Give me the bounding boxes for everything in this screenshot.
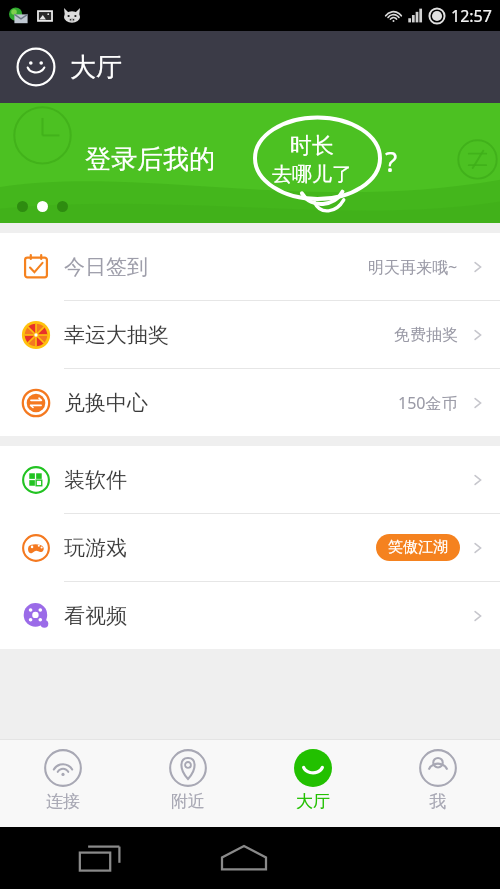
button[interactable]: 玩游戏 [0, 514, 500, 581]
staticText: 150金币 [398, 392, 458, 414]
button[interactable]: 登录后我的 [0, 103, 500, 223]
staticText: 免费抽奖 [394, 325, 458, 345]
staticText: 12:57 [451, 5, 492, 27]
staticText: 明天再来哦~ [368, 256, 458, 278]
other: Home [219, 843, 269, 873]
button[interactable]: 连接 [0, 739, 125, 827]
staticText: 我 [429, 791, 446, 812]
button[interactable]: 幸运大抽奖 [0, 301, 500, 368]
staticText: 登录后我的 [85, 143, 215, 176]
staticText: 去哪儿了 [272, 162, 352, 187]
staticText: 玩游戏 [64, 535, 127, 561]
staticText: 看视频 [64, 603, 127, 629]
staticText: ? [385, 142, 398, 180]
staticText: 大厅 [70, 51, 122, 84]
staticText: 笑傲江湖 [388, 538, 448, 557]
staticText: 连接 [46, 791, 80, 812]
button[interactable]: 装软件 [0, 446, 500, 513]
button[interactable]: 兑换中心 [0, 369, 500, 436]
button[interactable]: 看视频 [0, 582, 500, 649]
staticText: 时长 [290, 132, 334, 160]
staticText: 大厅 [296, 791, 330, 812]
button[interactable]: 我 [375, 739, 500, 827]
other: Recents [78, 843, 124, 873]
button[interactable]: 附近 [125, 739, 250, 827]
button[interactable]: 今日签到 [0, 233, 500, 300]
staticText: 幸运大抽奖 [64, 322, 169, 348]
staticText: 今日签到 [64, 254, 148, 280]
staticText: 兑换中心 [64, 390, 148, 416]
staticText: 附近 [171, 791, 205, 812]
button[interactable]: 大厅 [250, 739, 375, 827]
staticText: 装软件 [64, 467, 127, 493]
